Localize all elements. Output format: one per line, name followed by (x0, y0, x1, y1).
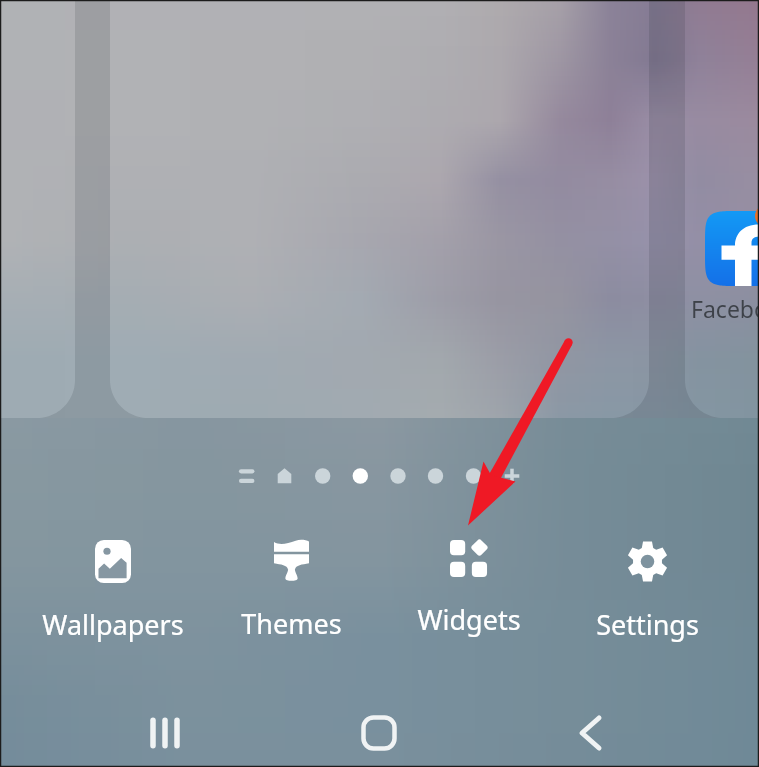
button[interactable]: Home (349, 700, 409, 760)
button[interactable]: Page (493, 455, 531, 493)
button[interactable]: Page (417, 455, 455, 493)
staticText: Settings (596, 606, 699, 643)
button[interactable]: Recents (136, 700, 196, 760)
staticText: Widgets (417, 601, 521, 638)
button[interactable]: App list (341, 455, 379, 493)
button[interactable]: Themes (202, 532, 380, 652)
button[interactable]: Back (569, 700, 629, 760)
button[interactable]: Page (455, 455, 493, 493)
button[interactable]: Widgets (380, 532, 558, 648)
button[interactable]: Facebook (705, 211, 759, 286)
button[interactable]: Settings (558, 532, 736, 653)
button[interactable]: Home screen (379, 455, 417, 493)
staticText: Wallpapers (42, 606, 184, 643)
staticText: Themes (241, 605, 342, 642)
staticText: Facebo (691, 293, 759, 324)
button[interactable]: Wallpapers (24, 532, 202, 653)
